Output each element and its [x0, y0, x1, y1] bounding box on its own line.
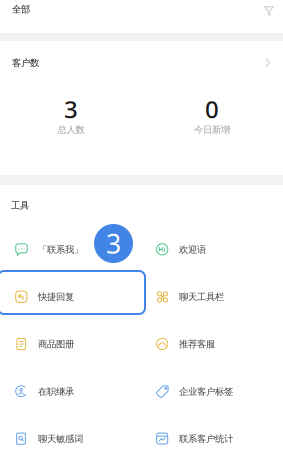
button[interactable]: 客户数: [0, 41, 283, 85]
staticText: 商品图册: [38, 338, 74, 350]
staticText: 在职继承: [38, 386, 74, 397]
staticText: 客户数: [12, 57, 39, 69]
button[interactable]: 商品图册: [0, 321, 141, 368]
button[interactable]: 聊天敏感词: [0, 415, 141, 462]
staticText: 快捷回复: [38, 291, 74, 303]
staticText: 欢迎语: [179, 244, 206, 255]
staticText: 3: [64, 93, 78, 125]
button[interactable]: 推荐客服: [141, 321, 282, 368]
button[interactable]: 聊天工具栏: [141, 273, 282, 321]
staticText: 企业客户标签: [179, 386, 233, 397]
button[interactable]: 快捷回复: [0, 273, 141, 321]
button[interactable]: 联系客户统计: [141, 415, 282, 462]
staticText: 0: [205, 93, 219, 125]
staticText: 聊天工具栏: [179, 291, 224, 303]
staticText: 今日新增: [194, 124, 230, 135]
staticText: 推荐客服: [179, 338, 215, 350]
button[interactable]: 筛选: [264, 0, 283, 33]
button[interactable]: 企业客户标签: [141, 368, 282, 415]
staticText: 工具: [11, 200, 29, 211]
staticText: 全部: [12, 3, 30, 15]
staticText: 聊天敏感词: [38, 433, 83, 445]
button[interactable]: 全部: [0, 0, 30, 33]
button[interactable]: 「联系我」: [0, 226, 141, 273]
button[interactable]: 欢迎语: [141, 226, 282, 273]
button[interactable]: 在职继承: [0, 368, 141, 415]
staticText: 「联系我」: [38, 244, 83, 255]
staticText: 总人数: [57, 124, 84, 135]
staticText: 3: [106, 226, 121, 261]
staticText: 联系客户统计: [179, 433, 233, 445]
